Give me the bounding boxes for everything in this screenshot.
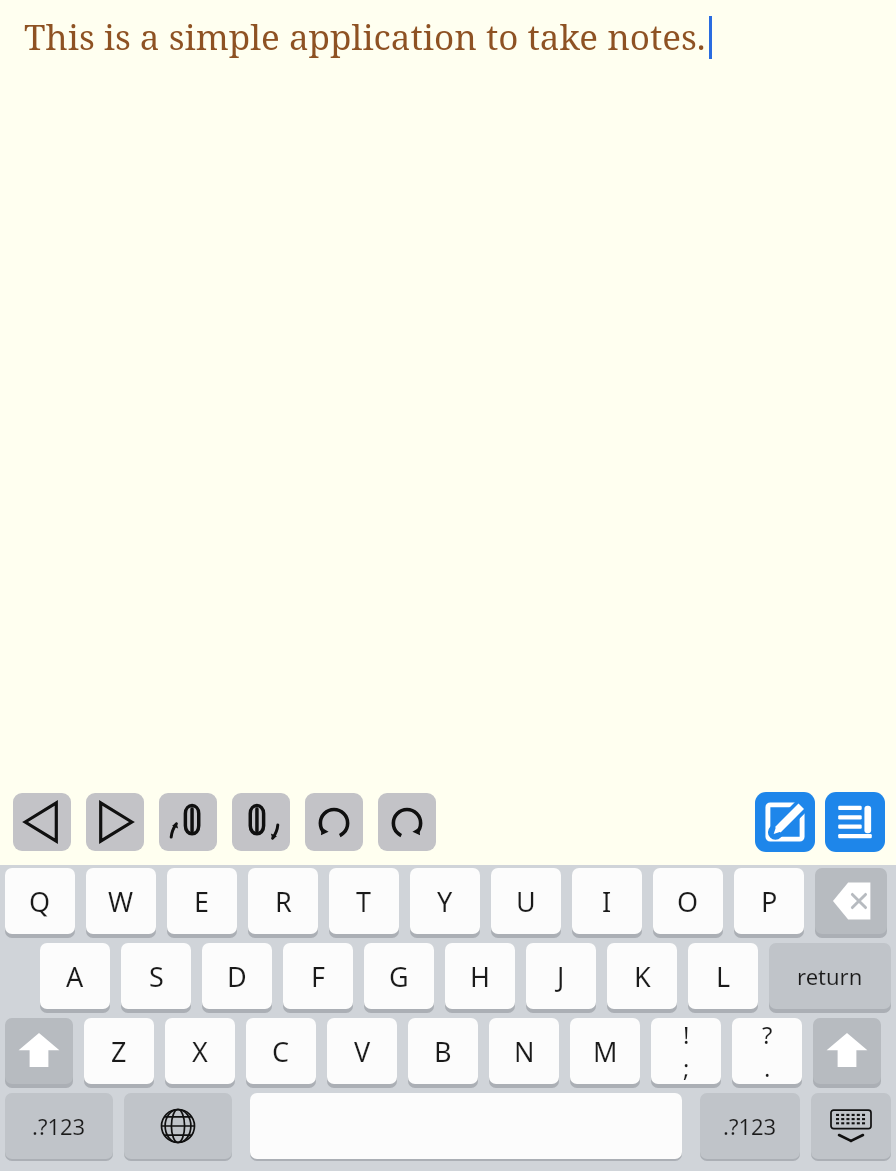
staticText: F — [311, 958, 326, 995]
button[interactable]: H — [445, 943, 515, 1009]
staticText: Z — [111, 1033, 127, 1070]
staticText: .?123 — [32, 1111, 86, 1141]
button[interactable]: U — [491, 868, 561, 934]
staticText: P — [761, 883, 778, 920]
button[interactable]: T — [329, 868, 399, 934]
button[interactable]: Change keyboard — [124, 1093, 232, 1159]
button[interactable]: Backspace — [815, 868, 887, 934]
button[interactable]: N — [489, 1018, 559, 1084]
button[interactable]: .?123 — [5, 1093, 113, 1159]
button[interactable]: G — [364, 943, 434, 1009]
button[interactable]: Redo — [378, 793, 436, 851]
button[interactable]: I — [572, 868, 642, 934]
staticText: ! — [683, 1018, 690, 1051]
staticText: . — [764, 1051, 771, 1084]
button[interactable]: Previous — [13, 793, 71, 851]
staticText: O — [677, 883, 699, 920]
button[interactable]: Undo — [305, 793, 363, 851]
button[interactable]: Attach to — [232, 793, 290, 851]
button[interactable]: Y — [410, 868, 480, 934]
button[interactable]: Notes list — [825, 792, 885, 852]
staticText: R — [275, 883, 292, 920]
staticText: .?123 — [723, 1111, 777, 1141]
button[interactable]: F — [283, 943, 353, 1009]
button[interactable]: return — [769, 943, 891, 1009]
staticText: M — [593, 1033, 618, 1070]
staticText: E — [194, 883, 210, 920]
staticText: This is a simple application to take not… — [24, 13, 706, 61]
staticText: D — [227, 958, 247, 995]
button[interactable]: E — [167, 868, 237, 934]
button[interactable]: Attach from — [159, 793, 217, 851]
button[interactable]: R — [248, 868, 318, 934]
button[interactable]: A — [40, 943, 110, 1009]
button[interactable]: Hide keyboard — [811, 1093, 891, 1159]
button[interactable]: W — [86, 868, 156, 934]
button[interactable]: Q — [5, 868, 75, 934]
button[interactable]: Shift — [813, 1018, 881, 1084]
staticText: K — [634, 958, 651, 995]
staticText: T — [356, 883, 372, 920]
staticText: C — [272, 1033, 290, 1070]
staticText: U — [516, 883, 536, 920]
button[interactable]: ? — [732, 1018, 802, 1084]
staticText: X — [192, 1033, 208, 1070]
button[interactable]: New note — [755, 792, 815, 852]
staticText: ; — [683, 1051, 690, 1084]
button[interactable]: C — [246, 1018, 316, 1084]
staticText: H — [470, 958, 491, 995]
staticText: G — [389, 958, 409, 995]
staticText: L — [716, 958, 731, 995]
staticText: N — [514, 1033, 535, 1070]
button[interactable]: Shift — [5, 1018, 73, 1084]
button[interactable]: Z — [84, 1018, 154, 1084]
staticText: S — [149, 958, 164, 995]
button[interactable]: B — [408, 1018, 478, 1084]
button[interactable]: Next — [86, 793, 144, 851]
staticText: V — [354, 1033, 371, 1070]
button[interactable]: L — [688, 943, 758, 1009]
button[interactable]: ! — [651, 1018, 721, 1084]
staticText: return — [797, 961, 863, 991]
staticText: Y — [437, 883, 453, 920]
staticText: Q — [29, 883, 51, 920]
staticText: I — [602, 883, 612, 920]
button[interactable]: J — [526, 943, 596, 1009]
staticText: J — [557, 958, 565, 995]
staticText: A — [66, 958, 84, 995]
button[interactable]: M — [570, 1018, 640, 1084]
button[interactable]: O — [653, 868, 723, 934]
staticText: W — [108, 883, 134, 920]
button[interactable]: S — [121, 943, 191, 1009]
button[interactable]: K — [607, 943, 677, 1009]
button[interactable]: .?123 — [700, 1093, 800, 1159]
staticText: ? — [762, 1018, 773, 1051]
button[interactable]: P — [734, 868, 804, 934]
button[interactable]: X — [165, 1018, 235, 1084]
button[interactable]: V — [327, 1018, 397, 1084]
staticText: B — [434, 1033, 452, 1070]
button[interactable]: D — [202, 943, 272, 1009]
